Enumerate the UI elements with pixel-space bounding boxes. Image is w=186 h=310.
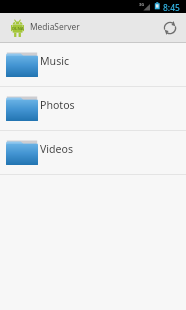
staticText: 3G xyxy=(139,2,145,7)
staticText: Videos xyxy=(40,142,74,156)
button[interactable]: Refresh xyxy=(158,17,182,39)
button[interactable]: Videos xyxy=(0,131,186,175)
staticText: DLNA xyxy=(12,26,24,32)
staticText: Music xyxy=(40,54,70,68)
staticText: Photos xyxy=(40,98,75,112)
button[interactable]: Music xyxy=(0,43,186,87)
staticText: MediaServer xyxy=(30,21,80,32)
button[interactable]: Photos xyxy=(0,87,186,131)
staticText: 8:45 xyxy=(163,2,180,14)
